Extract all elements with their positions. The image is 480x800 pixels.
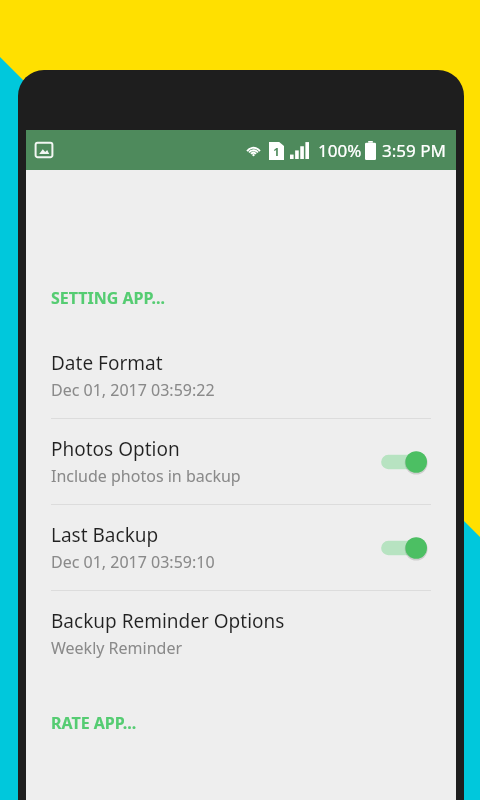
button[interactable]: Backup Reminder Options (26, 591, 456, 676)
button[interactable]: RATE APP... (26, 710, 456, 736)
button[interactable]: Toggle (375, 528, 431, 568)
button[interactable]: Photos Option (26, 419, 456, 504)
button[interactable]: Date Format (26, 333, 456, 418)
staticText: Weekly Reminder (51, 637, 183, 659)
staticText: Dec 01, 2017 03:59:22 (51, 379, 215, 401)
button[interactable]: Last Backup (26, 505, 456, 590)
button[interactable]: Toggle (375, 442, 431, 482)
staticText: Photos Option (51, 436, 180, 462)
staticText: Date Format (51, 350, 163, 376)
staticText: Dec 01, 2017 03:59:10 (51, 551, 215, 573)
staticText: 1 (273, 144, 280, 159)
staticText: 100% (318, 139, 362, 162)
staticText: Backup Reminder Options (51, 608, 285, 634)
staticText: RATE APP... (51, 712, 137, 734)
staticText: Last Backup (51, 522, 159, 548)
staticText: 3:59 PM (382, 139, 446, 162)
staticText: SETTING APP... (51, 287, 165, 309)
staticText: Include photos in backup (51, 465, 241, 487)
button[interactable]: SETTING APP... (26, 285, 456, 311)
